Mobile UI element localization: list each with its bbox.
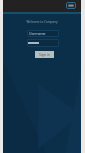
staticText: Sign in [39,52,50,57]
staticText: Welcome to Company [3,20,81,24]
button[interactable]: Browser window [66,2,76,9]
button[interactable]: Sign in [35,51,54,58]
button[interactable] [27,39,59,47]
staticText: Username [29,31,46,36]
button[interactable]: Username [27,30,59,37]
